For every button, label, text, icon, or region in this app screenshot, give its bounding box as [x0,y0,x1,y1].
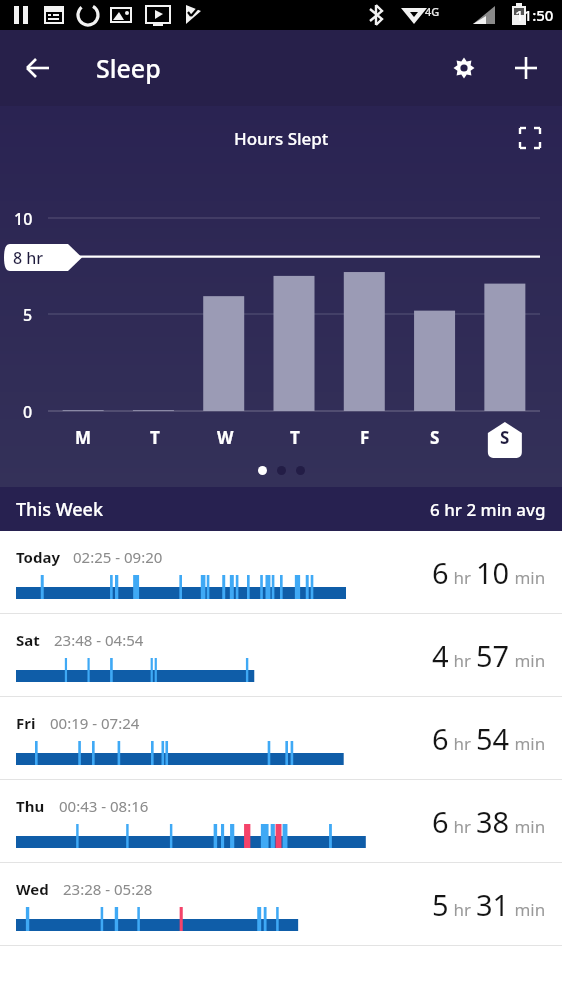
button[interactable]: Today [0,531,562,613]
staticText: 38 [476,802,510,841]
staticText: Sleep [96,51,161,85]
staticText: Sat [16,630,40,650]
staticText: Thu [16,796,45,816]
staticText: 5 [23,304,33,326]
button[interactable]: Fri [0,697,562,779]
staticText: Wed [16,879,49,899]
staticText: hr [449,649,476,672]
button[interactable]: Add [502,44,550,92]
button[interactable]: Sat [0,614,562,696]
staticText: min [510,649,546,672]
button[interactable]: Settings [440,44,488,92]
staticText: M [75,426,92,449]
staticText: 00:19 - 07:24 [50,713,140,733]
staticText: 6 [432,719,449,758]
button[interactable]: Expand chart [506,114,554,162]
staticText: 57 [476,636,510,675]
staticText: Today [16,547,61,567]
staticText: W [217,426,234,449]
staticText: 6 [432,553,449,592]
staticText: S [430,426,440,449]
staticText: 6 [432,802,449,841]
staticText: 8 hr [13,247,44,269]
staticText: T [150,426,160,449]
staticText: This Week [16,497,103,522]
button[interactable]: Back [14,44,62,92]
staticText: hr [449,732,476,755]
staticText: hr [449,566,476,589]
staticText: 23:28 - 05:28 [63,879,153,899]
staticText: 00:43 - 08:16 [59,796,149,816]
staticText: min [510,732,546,755]
staticText: hr [449,815,476,838]
button[interactable] [296,466,305,475]
staticText: F [360,426,370,449]
staticText: 54 [476,719,510,758]
staticText: min [510,566,546,589]
staticText: 10 [14,208,33,230]
staticText: 0 [23,401,33,423]
button[interactable] [277,466,286,475]
staticText: 4G [425,4,440,19]
staticText: 4 [432,636,449,675]
button[interactable]: Thu [0,780,562,862]
staticText: 6 hr 2 min avg [430,498,546,521]
staticText: min [510,815,546,838]
staticText: 23:48 - 04:54 [54,630,144,650]
staticText: 5 [432,885,449,924]
button[interactable] [258,466,267,475]
staticText: Fri [16,713,36,733]
staticText: Hours Slept [234,127,329,150]
staticText: 31 [476,885,510,924]
staticText: 10 [476,553,510,592]
staticText: min [510,898,546,921]
staticText: hr [449,898,476,921]
button[interactable]: Wed [0,863,562,945]
staticText: T [290,426,300,449]
staticText: 02:25 - 09:20 [73,547,163,567]
staticText: 11:50 [515,5,554,25]
staticText: S [500,426,510,449]
